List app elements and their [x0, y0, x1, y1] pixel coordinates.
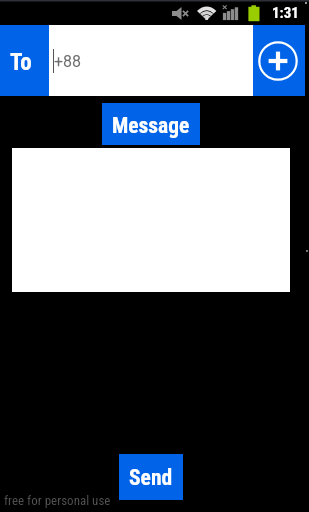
button[interactable]: Add contact	[253, 25, 305, 96]
button[interactable]: Message	[102, 103, 200, 145]
staticText: +88	[54, 52, 82, 71]
staticText: free for personal use	[4, 493, 111, 508]
staticText: 1:31	[272, 4, 299, 22]
staticText: Send	[129, 465, 173, 490]
button[interactable]: Send	[119, 454, 183, 500]
staticText: Message	[112, 113, 190, 138]
button[interactable]: To	[0, 25, 49, 96]
staticText: To	[10, 49, 32, 76]
button[interactable]: +88	[49, 25, 253, 96]
